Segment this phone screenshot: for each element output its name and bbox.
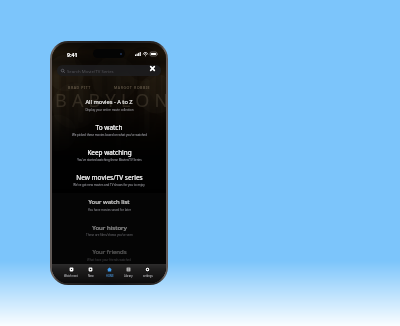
staticText: You have movies saved for later — [88, 208, 131, 212]
staticText: MARGOT ROBBIE — [114, 85, 151, 90]
staticText: Your friends — [92, 248, 127, 256]
staticText: Keep watching — [87, 148, 132, 157]
button[interactable]: New movies/TV series — [52, 170, 166, 195]
button[interactable]: Search Movie/TV Series — [57, 65, 161, 76]
button[interactable]: Keep watching — [52, 145, 166, 170]
staticText: Watch next — [64, 274, 78, 278]
staticText: Display your entire movie collection — [85, 108, 134, 112]
staticText: 9:41 — [67, 51, 78, 58]
staticText: We've got new movies and TV shows for yo… — [73, 183, 145, 187]
staticText: You've started watching these Movies/TV … — [77, 158, 142, 162]
staticText: settings — [143, 274, 153, 278]
button[interactable]: Library — [119, 268, 138, 279]
button[interactable]: settings — [138, 268, 157, 279]
button[interactable]: Your watch list — [52, 195, 166, 220]
staticText: To watch — [95, 123, 123, 132]
staticText: BRAD PITT — [68, 85, 91, 90]
staticText: New — [88, 274, 94, 278]
staticText: Library — [124, 274, 133, 278]
button[interactable]: To watch — [52, 120, 166, 145]
button[interactable]: Your friends — [52, 245, 166, 270]
staticText: Your watch list — [88, 198, 130, 206]
staticText: New movies/TV series — [76, 173, 143, 182]
button[interactable]: New — [81, 268, 100, 279]
staticText: HOME — [106, 274, 114, 278]
button[interactable]: Close — [148, 64, 157, 73]
staticText: These are films/shows you've seen — [86, 233, 133, 237]
staticText: We picked these movies based on what you… — [72, 133, 147, 137]
button[interactable]: Watch next — [61, 268, 81, 279]
button[interactable]: Your history — [52, 220, 166, 245]
staticText: Search Movie/TV Series — [67, 68, 114, 74]
staticText: All movies - A to Z — [85, 98, 133, 106]
staticText: What have your friends watched — [87, 258, 131, 262]
button[interactable]: All movies - A to Z — [52, 95, 166, 120]
button[interactable]: HOME — [100, 268, 119, 279]
staticText: BABYLON — [55, 88, 166, 113]
staticText: Your history — [92, 223, 127, 231]
